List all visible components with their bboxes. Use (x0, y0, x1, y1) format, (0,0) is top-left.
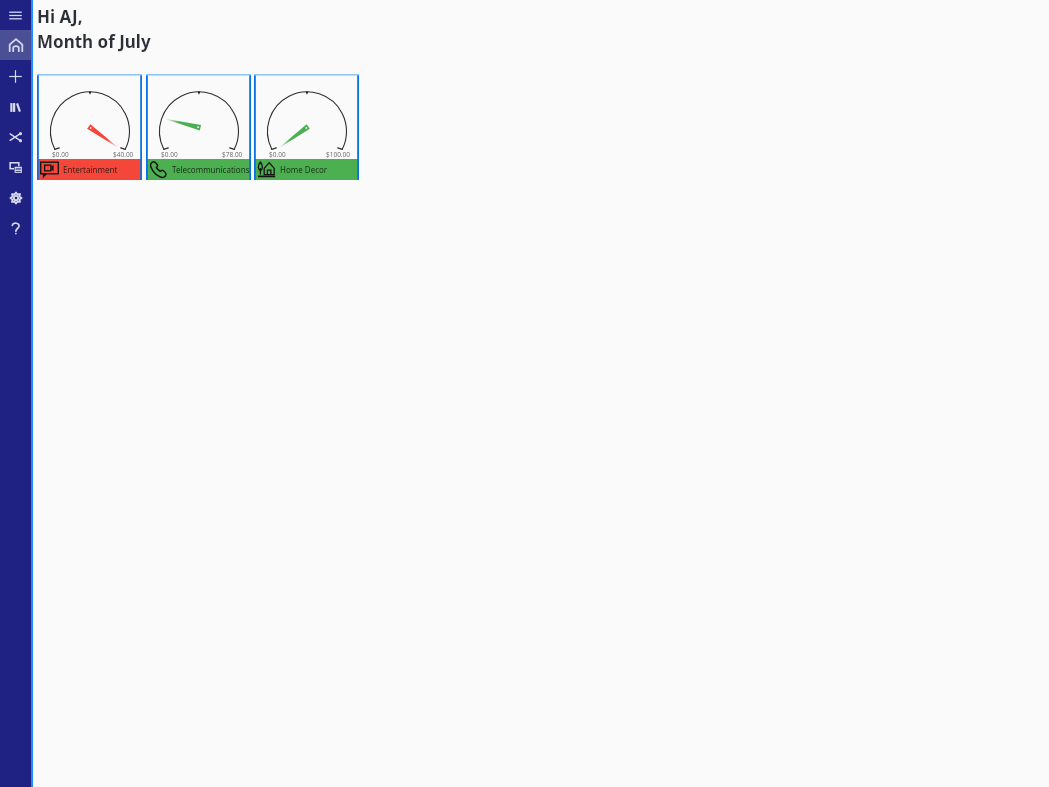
staticText: Entertainment (63, 164, 118, 175)
staticText: $100.00 (326, 150, 351, 159)
button[interactable]: Devices (0, 152, 31, 182)
staticText: $78.00 (222, 150, 243, 159)
button[interactable]: Library (0, 92, 31, 122)
button[interactable]: Help (0, 213, 31, 243)
staticText: $40.00 (113, 150, 134, 159)
staticText: $0.00 (52, 150, 69, 159)
staticText: $0.00 (161, 150, 178, 159)
button[interactable]: Settings (0, 183, 31, 213)
button[interactable]: Telecommunications (146, 74, 251, 180)
staticText: Hi AJ, (37, 5, 83, 28)
staticText: Home Decor (280, 164, 328, 175)
button[interactable]: Home (0, 30, 31, 60)
button[interactable]: Add (0, 61, 31, 91)
button[interactable]: Home Decor (254, 74, 359, 180)
staticText: Month of July (37, 30, 151, 53)
staticText: Telecommunications (172, 164, 250, 175)
staticText: $0.00 (269, 150, 286, 159)
button[interactable]: Entertainment (37, 74, 142, 180)
button[interactable]: Menu (0, 0, 31, 30)
button[interactable]: Shuffle (0, 122, 31, 152)
